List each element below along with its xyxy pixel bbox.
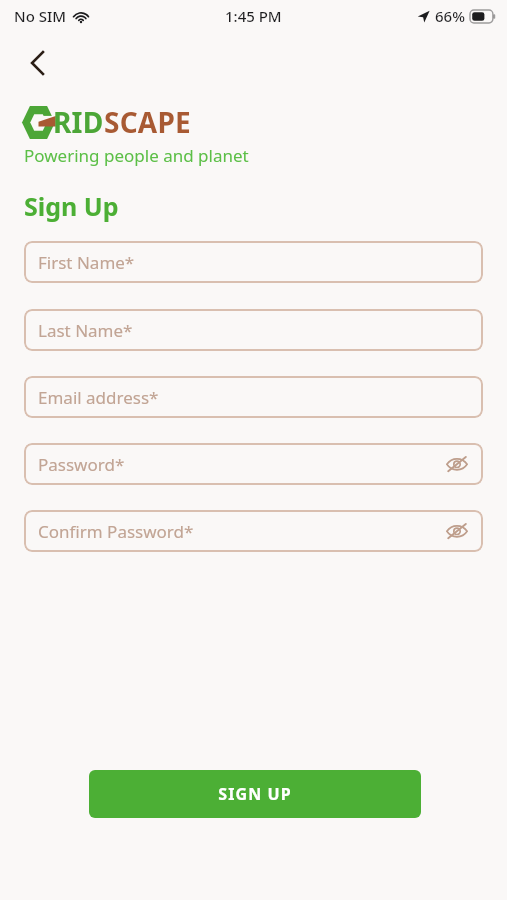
button[interactable]: Last Name*	[24, 309, 483, 351]
staticText: 1:45 PM	[225, 6, 282, 26]
staticText: Powering people and planet	[24, 144, 249, 167]
staticText: Password*	[38, 453, 125, 476]
staticText: RID	[53, 103, 104, 141]
button[interactable]: Email address*	[24, 376, 483, 418]
button[interactable]: Show password	[439, 513, 475, 549]
button[interactable]: Password*	[24, 443, 483, 485]
button[interactable]: Show password	[439, 446, 475, 482]
staticText: Confirm Password*	[38, 520, 194, 543]
button[interactable]: Back	[14, 42, 60, 84]
staticText: No SIM	[14, 6, 67, 26]
staticText: SCAPE	[104, 103, 191, 141]
button[interactable]: Confirm Password*	[24, 510, 483, 552]
staticText: Email address*	[38, 386, 159, 409]
button[interactable]: First Name*	[24, 241, 483, 283]
staticText: Sign Up	[24, 189, 119, 223]
staticText: Last Name*	[38, 319, 133, 342]
button[interactable]: SIGN UP	[89, 770, 421, 818]
staticText: 66%	[435, 6, 465, 26]
staticText: First Name*	[38, 251, 135, 274]
staticText: SIGN UP	[218, 783, 292, 805]
